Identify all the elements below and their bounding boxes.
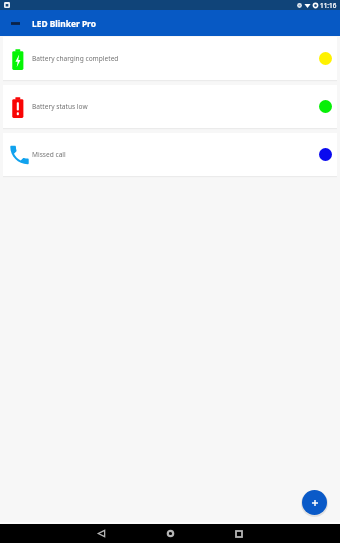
button[interactable]: Battery charging completed — [3, 37, 337, 80]
button[interactable]: Recent apps — [230, 525, 247, 542]
staticText: Missed call — [32, 150, 66, 159]
button[interactable]: Back — [93, 525, 110, 542]
staticText: 11:16 — [320, 1, 337, 10]
button[interactable]: Battery status low — [3, 85, 337, 128]
button[interactable]: Add — [302, 490, 327, 515]
staticText: LED Blinker Pro — [32, 18, 96, 29]
staticText: Battery status low — [32, 102, 88, 111]
staticText: Battery charging completed — [32, 54, 119, 63]
button[interactable]: Missed call — [3, 133, 337, 176]
button[interactable]: Navigation menu — [7, 15, 23, 31]
button[interactable]: Home — [162, 525, 179, 542]
